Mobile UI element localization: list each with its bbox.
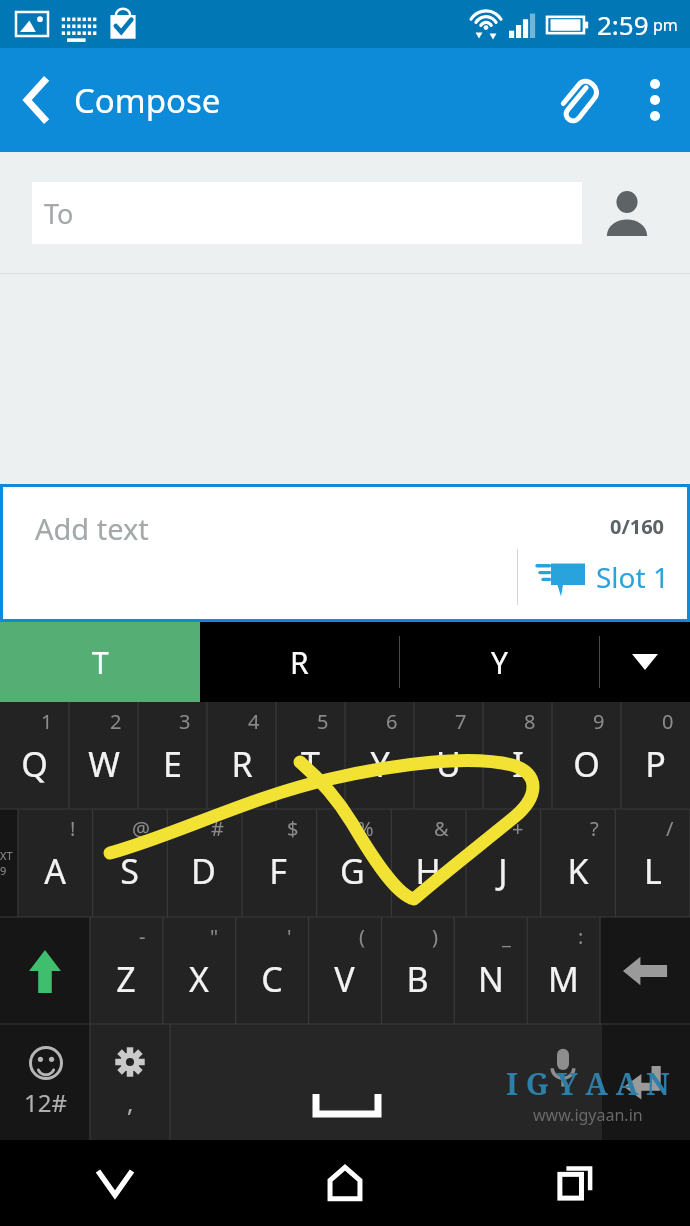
staticText: To (44, 195, 74, 232)
staticText: C (261, 956, 283, 1002)
staticText: 5 (317, 708, 329, 735)
button[interactable]: To (32, 182, 582, 244)
button[interactable]: @ (92, 809, 166, 917)
button[interactable]: 0 (621, 702, 690, 809)
staticText: V (334, 956, 355, 1002)
button[interactable]: Slot 1 (517, 549, 669, 605)
staticText: 0/160 (610, 513, 665, 540)
staticText: _ (502, 923, 511, 950)
staticText: I G Y A A N (506, 1063, 670, 1104)
button[interactable]: 4 (207, 702, 276, 809)
staticText: K (567, 848, 589, 894)
button[interactable]: ( (308, 917, 381, 1024)
staticText: X (189, 956, 209, 1002)
staticText: 12# (24, 1086, 67, 1119)
button[interactable]: + (465, 809, 540, 917)
button[interactable]: Shift (0, 917, 90, 1024)
staticText: # (211, 815, 224, 842)
staticText: + (512, 815, 524, 842)
staticText: U (436, 741, 461, 787)
staticText: 3 (179, 708, 191, 735)
staticText: Y (491, 642, 508, 683)
staticText: & (434, 815, 449, 842)
button[interactable]: Voice input (524, 1024, 602, 1140)
button[interactable]: 8 (483, 702, 552, 809)
staticText: : (578, 923, 584, 950)
staticText: P (645, 741, 666, 787)
button[interactable]: _ (454, 917, 527, 1024)
staticText: ! (70, 815, 76, 842)
staticText: ) (432, 923, 438, 950)
button[interactable]: # (166, 809, 240, 917)
staticText: A (44, 848, 66, 894)
staticText: / (666, 815, 674, 842)
staticText: @ (132, 815, 150, 842)
button[interactable]: 7 (414, 702, 483, 809)
staticText: H (415, 848, 441, 894)
button[interactable]: Y (400, 622, 599, 702)
button[interactable]: 9 (552, 702, 621, 809)
staticText: G (340, 848, 365, 894)
staticText: D (191, 848, 216, 894)
staticText: Add text (35, 509, 149, 548)
staticText: B (406, 956, 429, 1002)
button[interactable]: , (90, 1024, 170, 1140)
button[interactable]: $ (240, 809, 315, 917)
staticText: T (301, 741, 320, 787)
button[interactable]: ! (18, 809, 92, 917)
button[interactable]: Backspace (600, 917, 690, 1024)
staticText: N (478, 956, 504, 1002)
staticText: I (512, 741, 524, 787)
staticText: % (357, 815, 374, 842)
button[interactable]: / (615, 809, 690, 917)
button[interactable]: T (0, 622, 200, 702)
staticText: L (644, 848, 662, 894)
button[interactable]: ) (381, 917, 454, 1024)
staticText: T (92, 642, 109, 683)
button[interactable]: 6 (345, 702, 414, 809)
button[interactable]: 12# (0, 1024, 90, 1140)
button[interactable]: & (390, 809, 465, 917)
staticText: pm (653, 14, 678, 36)
button[interactable]: Recent apps (460, 1140, 690, 1226)
button[interactable]: Space (170, 1024, 524, 1140)
staticText: 0 (662, 708, 674, 735)
staticText: www.igyaan.in (533, 1104, 643, 1126)
staticText: 8 (524, 708, 536, 735)
staticText: O (573, 741, 600, 787)
staticText: ? (590, 815, 599, 842)
button[interactable]: Enter (602, 1024, 690, 1140)
button[interactable]: Pick contact (582, 168, 672, 258)
staticText: Y (370, 741, 390, 787)
button[interactable]: - (90, 917, 162, 1024)
staticText: 7 (455, 708, 467, 735)
button[interactable]: Hide keyboard (0, 1140, 230, 1226)
button[interactable]: Back (0, 48, 74, 152)
button[interactable]: More suggestions (600, 622, 690, 702)
staticText: 9 (593, 708, 605, 735)
button[interactable]: More options (620, 48, 690, 152)
button[interactable]: Attach (534, 48, 620, 152)
staticText: Slot 1 (596, 558, 669, 596)
button[interactable]: Add text (3, 487, 687, 619)
button[interactable]: 5 (276, 702, 345, 809)
staticText: F (269, 848, 287, 894)
staticText: 2:59 (597, 7, 649, 42)
button[interactable]: 2 (69, 702, 138, 809)
staticText: ' (287, 923, 292, 950)
button[interactable]: % (315, 809, 390, 917)
staticText: 1 (41, 708, 53, 735)
button[interactable]: ? (540, 809, 615, 917)
staticText: $ (287, 815, 299, 842)
button[interactable]: : (527, 917, 600, 1024)
staticText: Compose (74, 78, 221, 123)
button[interactable]: Home (230, 1140, 460, 1226)
staticText: E (163, 741, 182, 787)
button[interactable]: " (162, 917, 235, 1024)
button[interactable]: ' (235, 917, 308, 1024)
staticText: R (231, 741, 253, 787)
button[interactable]: 3 (138, 702, 207, 809)
staticText: ( (359, 923, 365, 950)
button[interactable]: 1 (0, 702, 69, 809)
button[interactable]: R (200, 622, 399, 702)
